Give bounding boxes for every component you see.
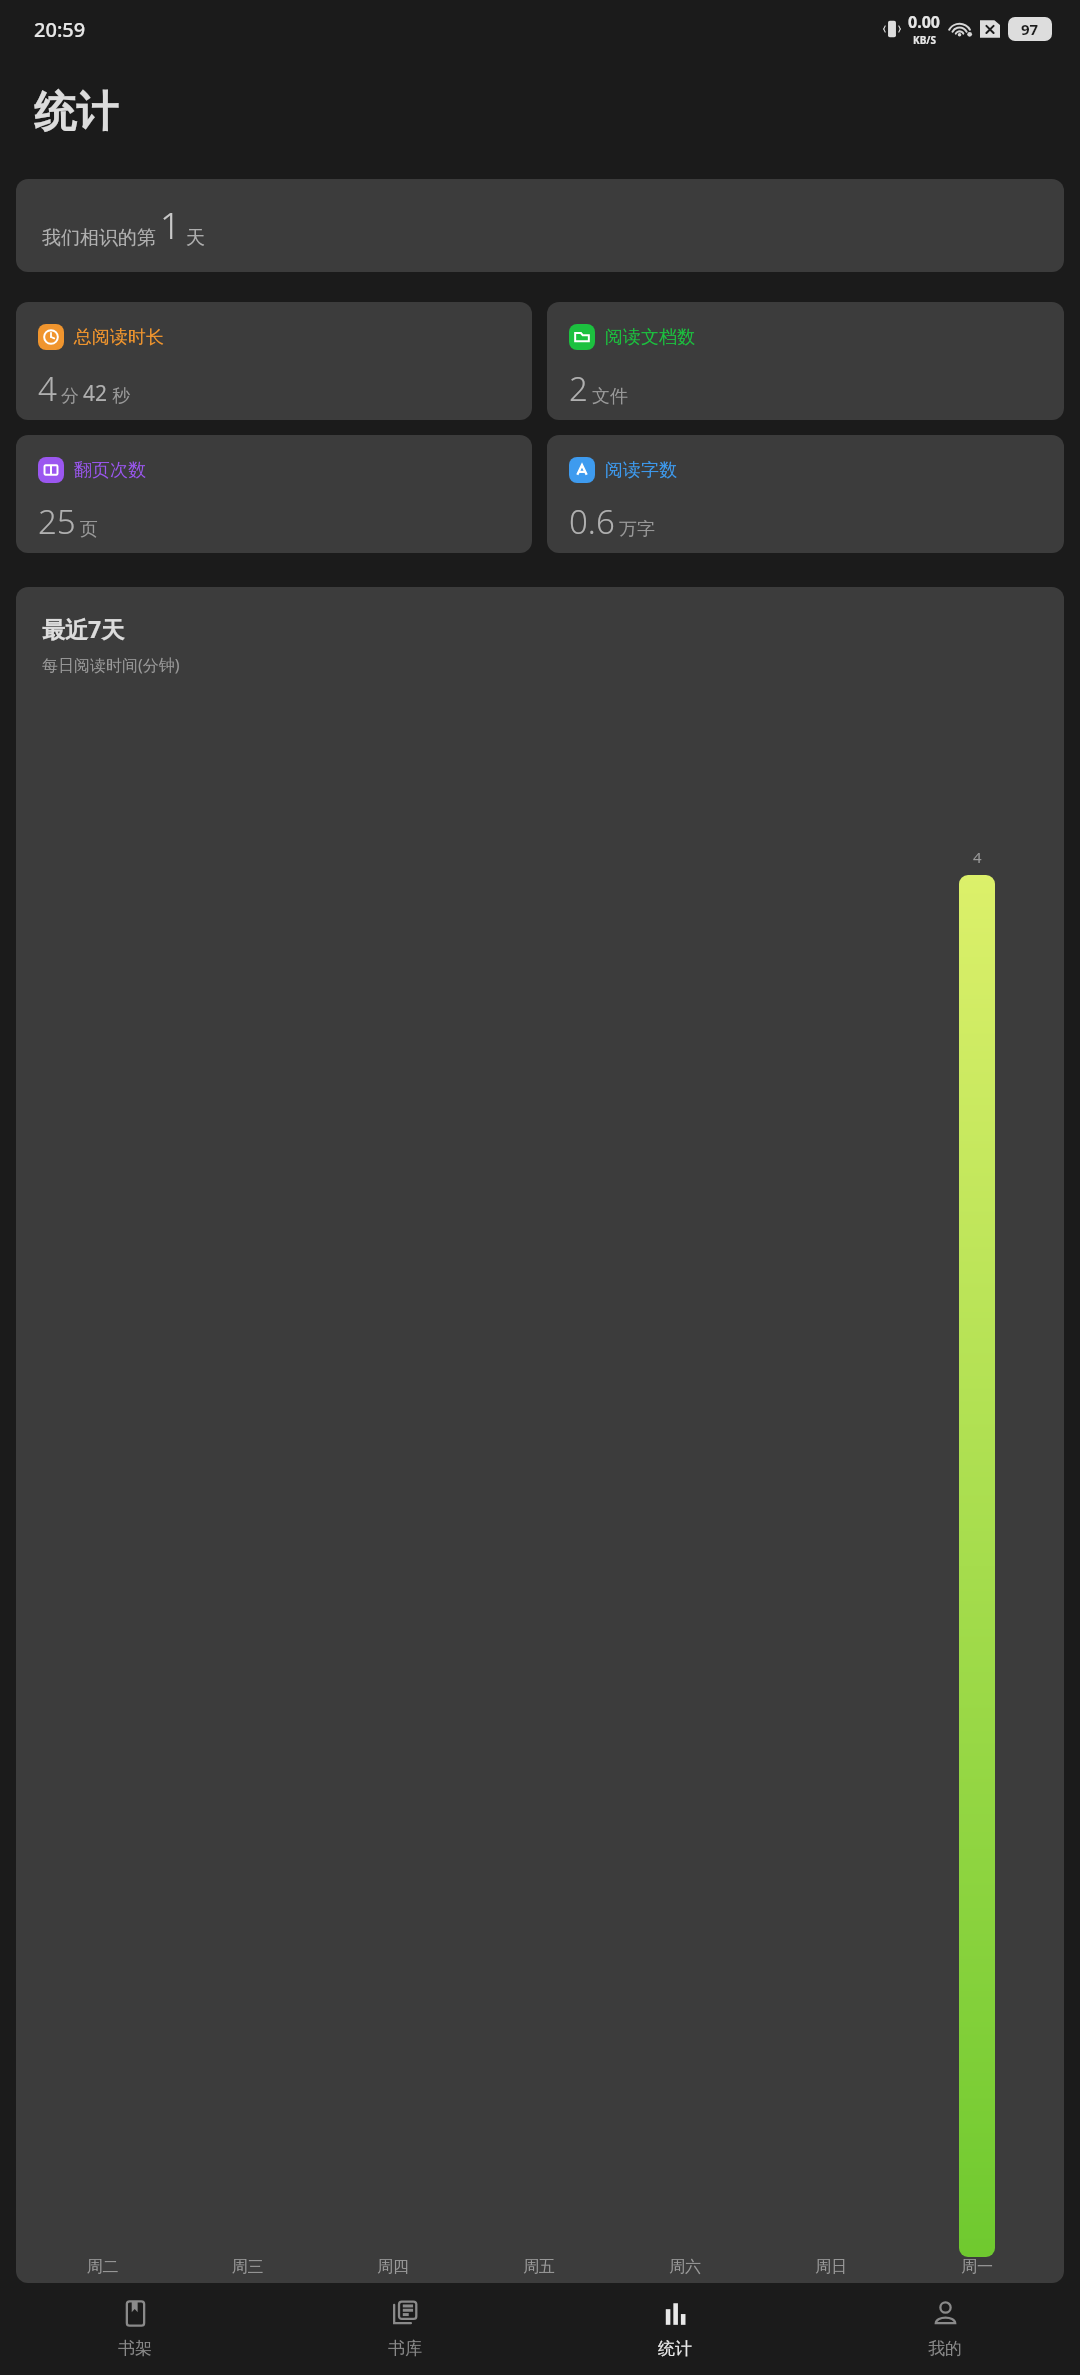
staticText: 天 (186, 226, 205, 250)
staticText: 万字 (619, 518, 655, 541)
button[interactable]: 总阅读时长 (16, 302, 532, 420)
staticText: 周日 (758, 2257, 904, 2277)
staticText: 周三 (175, 2257, 320, 2277)
button[interactable]: 阅读字数 (547, 435, 1064, 553)
button[interactable]: 书架 (0, 2283, 270, 2375)
staticText: 书库 (388, 2338, 422, 2359)
staticText: 4 (973, 847, 982, 867)
button[interactable]: 我们相识的第 (16, 179, 1064, 272)
staticText: 20:59 (34, 16, 86, 43)
staticText: 1 (160, 201, 181, 250)
button[interactable]: 翻页次数 (16, 435, 532, 553)
button[interactable]: 统计 (540, 2283, 810, 2375)
staticText: 书架 (118, 2338, 152, 2359)
staticText: 我们相识的第 (42, 226, 156, 250)
staticText: 周二 (30, 2257, 175, 2277)
staticText: 分 (61, 385, 79, 408)
staticText: 周六 (612, 2257, 758, 2277)
staticText: 周五 (466, 2257, 612, 2277)
staticText: 统计 (658, 2338, 692, 2359)
button[interactable]: 书库 (270, 2283, 540, 2375)
staticText: 秒 (112, 385, 130, 408)
staticText: 最近7天 (42, 613, 125, 644)
staticText: 阅读字数 (605, 459, 677, 482)
staticText: 0.6 (569, 499, 615, 544)
staticText: 文件 (592, 385, 628, 408)
staticText: 周一 (904, 2257, 1050, 2277)
staticText: 每日阅读时间(分钟) (42, 654, 180, 676)
button[interactable]: 我的 (810, 2283, 1080, 2375)
staticText: 总阅读时长 (74, 326, 164, 349)
staticText: 4 (38, 366, 57, 411)
button[interactable]: 阅读文档数 (547, 302, 1064, 420)
staticText: 阅读文档数 (605, 326, 695, 349)
staticText: 统计 (34, 86, 118, 139)
staticText: KB/S (913, 33, 936, 47)
staticText: 周四 (320, 2257, 466, 2277)
staticText: 2 (569, 366, 588, 411)
staticText: 0.00 (908, 11, 940, 33)
staticText: 25 (38, 499, 76, 544)
staticText: 页 (80, 518, 98, 541)
staticText: 我的 (928, 2338, 962, 2359)
staticText: 42 (83, 379, 108, 408)
staticText: 翻页次数 (74, 459, 146, 482)
staticText: 97 (1021, 19, 1039, 39)
